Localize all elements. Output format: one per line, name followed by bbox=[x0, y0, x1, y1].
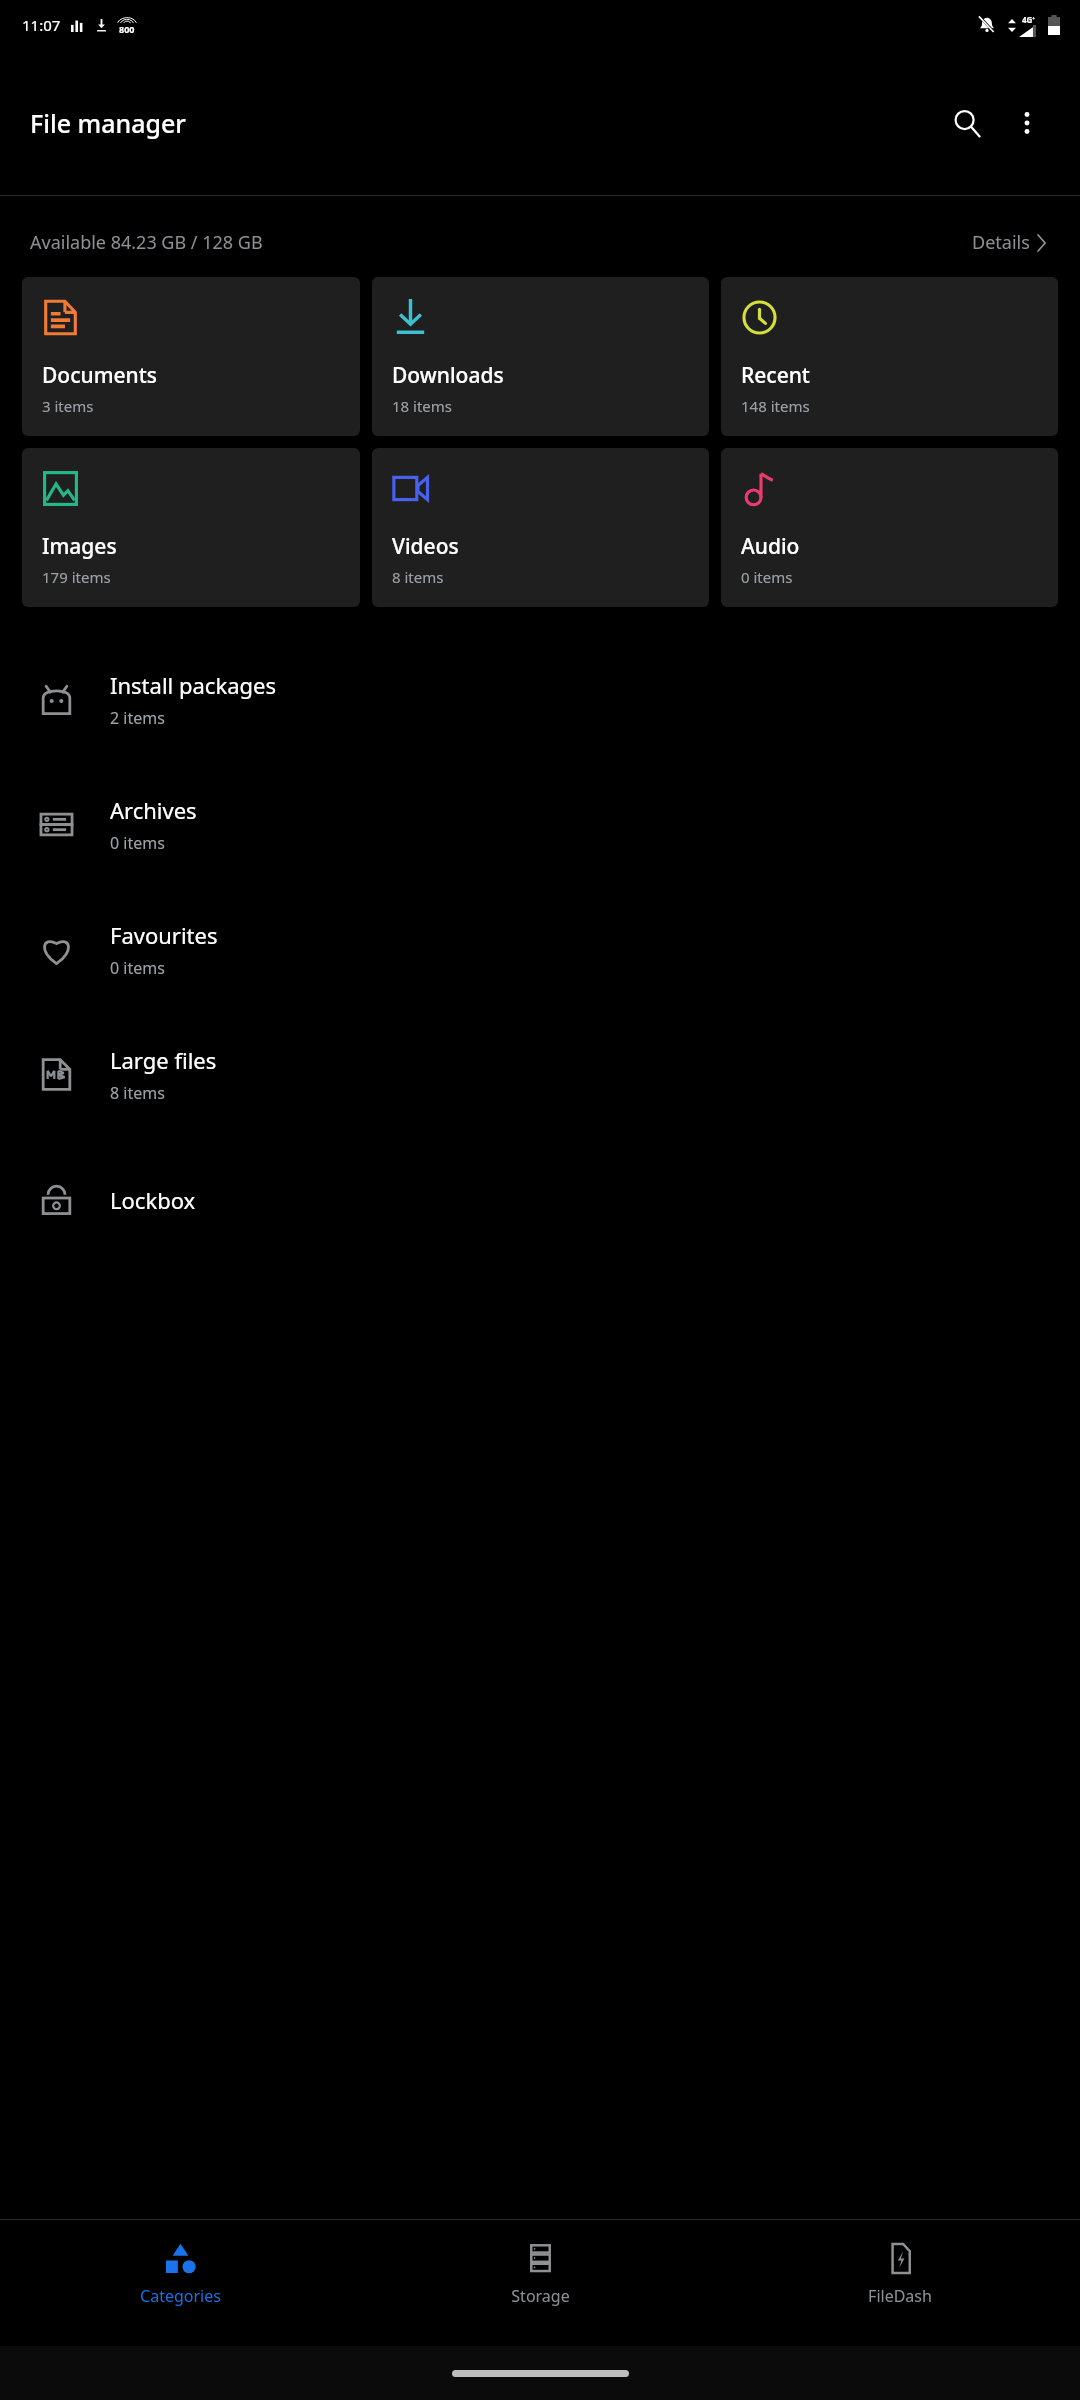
button[interactable]: Favourites bbox=[0, 887, 1080, 1012]
staticText: Archives bbox=[110, 795, 197, 825]
button[interactable]: Archives bbox=[0, 762, 1080, 887]
staticText: Details bbox=[972, 230, 1030, 255]
button[interactable]: Downloads bbox=[372, 277, 709, 436]
button[interactable]: Storage bbox=[360, 2220, 720, 2346]
staticText: 0 items bbox=[741, 567, 793, 587]
staticText: Install packages bbox=[110, 670, 276, 700]
button[interactable]: Images bbox=[22, 448, 360, 607]
staticText: Large files bbox=[110, 1045, 217, 1075]
button[interactable]: Videos bbox=[372, 448, 709, 607]
staticText: File manager bbox=[30, 106, 186, 140]
staticText: 8 items bbox=[392, 567, 444, 587]
staticText: Downloads bbox=[392, 361, 504, 390]
button[interactable]: FileDash bbox=[720, 2220, 1080, 2346]
staticText: 18 items bbox=[392, 396, 453, 416]
staticText: Documents bbox=[42, 361, 158, 390]
staticText: Favourites bbox=[110, 920, 218, 950]
button[interactable]: Categories bbox=[0, 2220, 360, 2346]
staticText: Available 84.23 GB / 128 GB bbox=[30, 230, 263, 255]
staticText: 800 bbox=[119, 23, 135, 35]
button[interactable]: Install packages bbox=[0, 637, 1080, 762]
staticText: Audio bbox=[741, 532, 800, 561]
staticText: 2 items bbox=[110, 707, 165, 729]
button[interactable]: Recent bbox=[721, 277, 1058, 436]
button[interactable]: Search bbox=[940, 96, 994, 150]
staticText: 3 items bbox=[42, 396, 94, 416]
staticText: FileDash bbox=[868, 2285, 932, 2307]
button[interactable]: Audio bbox=[721, 448, 1058, 607]
staticText: 4G⁺ bbox=[1022, 14, 1036, 25]
button[interactable]: Large files bbox=[0, 1012, 1080, 1137]
staticText: Recent bbox=[741, 361, 810, 390]
staticText: Storage bbox=[511, 2285, 570, 2307]
staticText: Images bbox=[42, 532, 117, 561]
staticText: 0 items bbox=[110, 832, 165, 854]
button[interactable]: Documents bbox=[22, 277, 360, 436]
staticText: 8 items bbox=[110, 1082, 165, 1104]
button[interactable]: Details bbox=[968, 224, 1050, 261]
staticText: 179 items bbox=[42, 567, 111, 587]
button[interactable]: More options bbox=[1000, 96, 1054, 150]
staticText: 148 items bbox=[741, 396, 810, 416]
staticText: Categories bbox=[140, 2285, 221, 2307]
staticText: Lockbox bbox=[110, 1185, 196, 1215]
staticText: Videos bbox=[392, 532, 459, 561]
staticText: 11:07 bbox=[22, 15, 61, 35]
button[interactable]: Lockbox bbox=[0, 1137, 1080, 1262]
staticText: 0 items bbox=[110, 957, 165, 979]
